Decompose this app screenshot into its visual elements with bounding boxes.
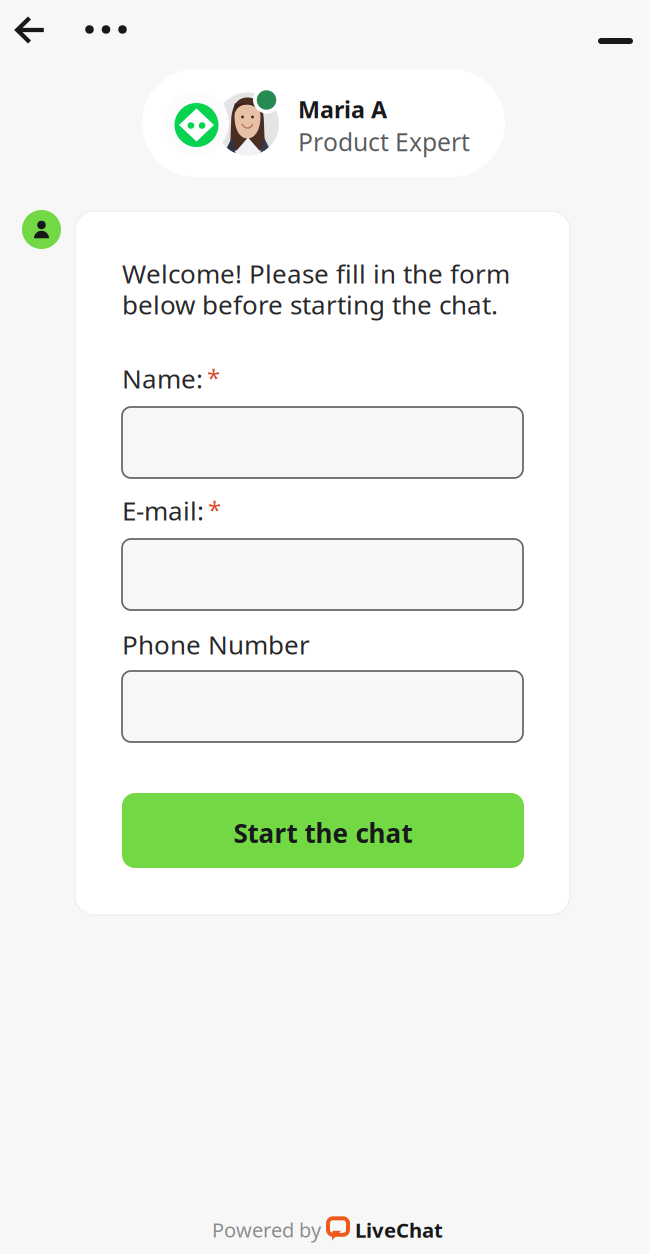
- staticText: Powered by: [212, 1216, 321, 1243]
- button[interactable]: Back: [5, 6, 56, 54]
- staticText: Maria A: [298, 93, 387, 125]
- staticText: *: [207, 361, 220, 394]
- button[interactable]: More options: [73, 13, 139, 46]
- staticText: E-mail:: [122, 493, 204, 528]
- staticText: *: [208, 493, 221, 526]
- button[interactable]: Start the chat: [122, 793, 524, 868]
- staticText: Name:: [122, 361, 203, 396]
- staticText: LiveChat: [355, 1216, 443, 1244]
- staticText: Start the chat: [233, 815, 412, 851]
- staticText: Welcome! Please fill in the form: [122, 256, 510, 291]
- button[interactable]: Minimize: [584, 24, 647, 58]
- staticText: Product Expert: [298, 125, 470, 159]
- staticText: Phone Number: [122, 627, 310, 662]
- staticText: below before starting the chat.: [122, 287, 498, 322]
